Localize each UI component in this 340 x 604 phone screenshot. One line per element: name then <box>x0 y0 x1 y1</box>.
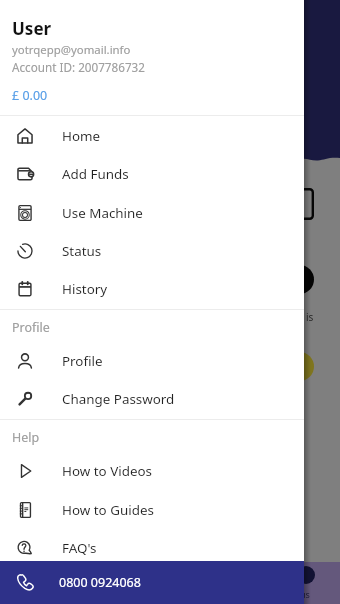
button[interactable]: Change Password <box>0 380 304 418</box>
staticText: Add Funds <box>62 165 129 183</box>
button[interactable]: 0800 0924068 <box>0 561 304 604</box>
staticText: is <box>306 310 314 324</box>
staticText: User <box>12 17 52 40</box>
staticText: Profile <box>12 319 50 336</box>
staticText: Home <box>62 127 101 145</box>
staticText: Status <box>62 242 102 260</box>
staticText: Account ID: 2007786732 <box>12 59 145 75</box>
staticText: us <box>300 588 310 600</box>
staticText: FAQ's <box>62 539 97 557</box>
staticText: 0800 0924068 <box>59 574 141 591</box>
button[interactable]: Profile <box>0 342 304 380</box>
button[interactable]: History <box>0 270 304 308</box>
staticText: Profile <box>62 352 103 370</box>
button[interactable]: How to Videos <box>0 452 304 490</box>
staticText: Change Password <box>62 390 175 408</box>
button[interactable]: FAQ's <box>0 529 304 567</box>
button[interactable]: Use Machine <box>0 194 304 232</box>
button[interactable]: How to Guides <box>0 491 304 529</box>
staticText: £ 0.00 <box>12 87 48 104</box>
staticText: yotrqepp@yomail.info <box>12 42 131 58</box>
button[interactable]: Home <box>0 117 304 155</box>
button[interactable]: Status <box>0 232 304 270</box>
button[interactable]: Add Funds <box>0 155 304 193</box>
staticText: How to Videos <box>62 462 152 480</box>
staticText: How to Guides <box>62 501 154 519</box>
staticText: Use Machine <box>62 204 143 222</box>
staticText: Help <box>12 429 40 446</box>
staticText: History <box>62 280 108 298</box>
